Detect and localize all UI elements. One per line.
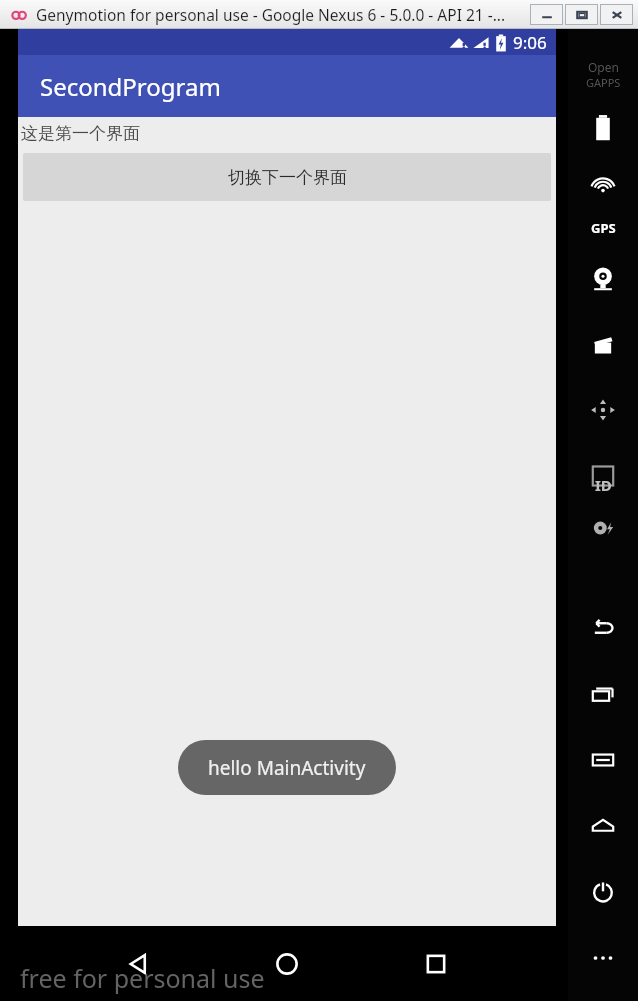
button[interactable]: Battery: [572, 95, 634, 161]
button[interactable]: Back: [109, 935, 167, 993]
button[interactable]: Maximize: [565, 4, 598, 25]
button[interactable]: Identifiers: [572, 443, 634, 509]
staticText: free for personal use: [20, 961, 265, 995]
staticText: hello MainActivity: [208, 755, 366, 781]
button[interactable]: Recent apps: [572, 661, 634, 727]
staticText: Open: [588, 59, 619, 75]
staticText: 9:06: [513, 31, 547, 54]
staticText: 这是第一个界面: [21, 123, 140, 144]
staticText: 切换下一个界面: [228, 167, 347, 188]
button[interactable]: Menu: [572, 727, 634, 793]
staticText: ID: [595, 475, 612, 495]
button[interactable]: Home: [572, 793, 634, 859]
button[interactable]: Minimize: [530, 4, 563, 25]
button[interactable]: Accelerometer: [572, 377, 634, 443]
button[interactable]: Back: [572, 595, 634, 661]
button[interactable]: Close: [600, 4, 633, 25]
button[interactable]: Recents: [407, 935, 465, 993]
button[interactable]: Camera: [572, 245, 634, 311]
button[interactable]: 切换下一个界面: [23, 153, 551, 201]
staticText: GPS: [591, 219, 616, 237]
staticText: Genymotion for personal use - Google Nex…: [36, 4, 506, 25]
button[interactable]: More options: [572, 925, 634, 991]
button[interactable]: Power: [572, 859, 634, 925]
button[interactable]: Record screen: [572, 311, 634, 377]
button[interactable]: Home: [258, 935, 316, 993]
button[interactable]: GPS: [572, 161, 634, 227]
button[interactable]: Open GAPPS: [573, 53, 633, 95]
staticText: GAPPS: [586, 75, 621, 90]
button[interactable]: Disk IO: [572, 495, 634, 561]
staticText: SecondProgram: [40, 70, 221, 103]
